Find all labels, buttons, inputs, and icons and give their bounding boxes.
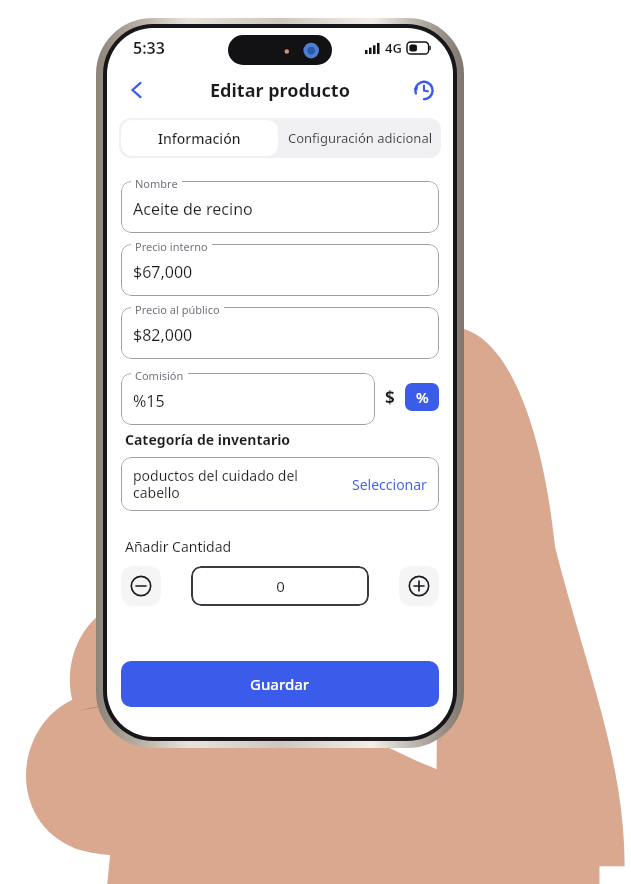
staticText: Seleccionar: [352, 475, 427, 494]
staticText: poductos del cuidado del cabello: [133, 466, 344, 502]
staticText: Precio al público: [135, 302, 220, 317]
button[interactable]: History: [403, 70, 443, 110]
button[interactable]: $: [385, 386, 395, 409]
button[interactable]: Decrease quantity: [121, 566, 161, 606]
button[interactable]: Información: [121, 120, 278, 156]
button[interactable]: poductos del cuidado del cabello: [121, 457, 439, 511]
staticText: 5:33: [133, 37, 165, 59]
button[interactable]: Configuración adicional: [280, 118, 441, 158]
staticText: 0: [276, 576, 285, 596]
button[interactable]: Guardar: [121, 661, 439, 707]
staticText: Editar producto: [210, 78, 350, 103]
staticText: Categoría de inventario: [125, 430, 291, 449]
button[interactable]: %: [405, 383, 439, 411]
staticText: Nombre: [135, 176, 178, 191]
button[interactable]: Increase quantity: [399, 566, 439, 606]
button[interactable]: $67,000: [121, 244, 439, 296]
button[interactable]: 0: [191, 566, 369, 606]
staticText: Información: [158, 129, 241, 148]
staticText: Aceite de recino: [133, 198, 253, 220]
staticText: %: [416, 387, 429, 407]
button[interactable]: %15: [121, 373, 375, 425]
staticText: Comisión: [135, 368, 184, 383]
staticText: Guardar: [250, 674, 310, 694]
staticText: $82,000: [133, 324, 193, 346]
button[interactable]: $82,000: [121, 307, 439, 359]
button[interactable]: Back: [117, 70, 157, 110]
staticText: Añadir Cantidad: [125, 537, 232, 556]
staticText: $67,000: [133, 261, 193, 283]
staticText: %15: [133, 390, 165, 412]
staticText: Configuración adicional: [288, 129, 433, 147]
button[interactable]: Aceite de recino: [121, 181, 439, 233]
staticText: 4G: [385, 39, 402, 57]
staticText: Precio interno: [135, 239, 208, 254]
